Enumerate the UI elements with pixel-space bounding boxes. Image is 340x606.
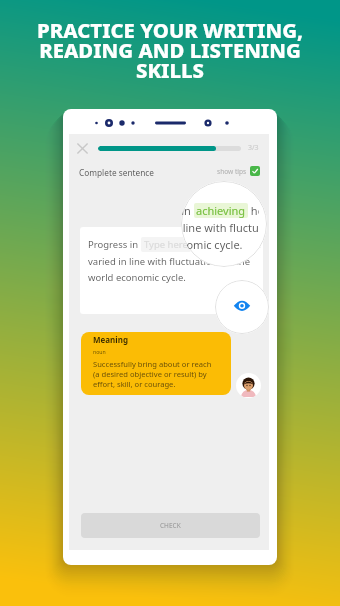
staticText: s in xyxy=(181,203,194,218)
staticText: show tips xyxy=(217,167,247,176)
staticText: varied in line with fluctuations in the xyxy=(88,255,251,268)
button[interactable]: CHECK xyxy=(81,513,260,538)
staticText: economic cycle xyxy=(191,238,261,251)
staticText: he xyxy=(248,203,259,218)
staticText: CHECK xyxy=(160,521,181,530)
button[interactable]: Show tips xyxy=(217,166,260,176)
staticText: Meaning xyxy=(93,334,128,345)
staticText: achieving xyxy=(196,203,246,218)
staticText: Progress in xyxy=(88,238,141,251)
button[interactable]: Type here xyxy=(144,238,188,251)
staticText: 3/3 xyxy=(248,143,259,153)
staticText: world economic cycle. xyxy=(88,271,186,284)
button[interactable]: Tutor avatar xyxy=(236,373,261,398)
button[interactable]: Close xyxy=(74,140,91,157)
button[interactable]: Show answer xyxy=(215,280,269,334)
staticText: PRACTICE YOUR WRITING, READING AND LISTE… xyxy=(0,16,340,84)
staticText: onomic cycle. xyxy=(181,237,243,252)
staticText: Type here xyxy=(144,238,188,251)
staticText: Complete sentence xyxy=(79,167,155,178)
staticText: n line with fluctuati xyxy=(181,220,259,235)
staticText: Successfully bring about or reach (a des… xyxy=(93,359,212,389)
staticText: noun xyxy=(93,348,106,355)
